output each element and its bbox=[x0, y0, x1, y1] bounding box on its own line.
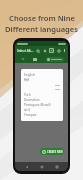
staticText: Portugues (Brasil) bbox=[24, 103, 51, 107]
button[interactable]: Back bbox=[23, 163, 30, 170]
staticText: हिंदी bbox=[24, 78, 30, 82]
button[interactable]: Help bbox=[56, 48, 61, 53]
button[interactable]: Deutsches bbox=[24, 97, 60, 102]
button[interactable]: Search bbox=[35, 48, 40, 53]
button[interactable] bbox=[46, 57, 64, 62]
button[interactable]: Türk bbox=[24, 92, 60, 97]
button[interactable]: Home bbox=[38, 163, 45, 170]
staticText: CREATE NEW bbox=[47, 150, 63, 154]
button[interactable]: English bbox=[24, 72, 60, 77]
button[interactable]: Recents bbox=[53, 163, 60, 170]
button[interactable]: Français bbox=[24, 112, 60, 117]
button[interactable]: 한국 bbox=[24, 107, 60, 112]
staticText: Deutsches bbox=[24, 98, 40, 102]
staticText: English bbox=[24, 73, 35, 77]
button[interactable]: Sort bbox=[21, 57, 25, 61]
staticText: Choose from Nine bbox=[9, 13, 75, 23]
staticText: 한국 bbox=[24, 108, 31, 112]
button[interactable]: Grid view bbox=[33, 58, 37, 61]
button[interactable]: हिंदी bbox=[24, 77, 60, 82]
button[interactable]: CREATE NEW bbox=[40, 148, 64, 155]
button[interactable]: Select Alt... bbox=[17, 49, 34, 53]
button[interactable]: More options bbox=[63, 49, 66, 52]
staticText: Français bbox=[24, 113, 37, 117]
button[interactable]: Portugues (Brasil) bbox=[24, 102, 60, 107]
button[interactable]: Notifications bbox=[42, 48, 47, 53]
button[interactable]: Language bbox=[49, 48, 54, 53]
staticText: Türk bbox=[24, 93, 31, 97]
staticText: Different languages bbox=[5, 24, 78, 34]
